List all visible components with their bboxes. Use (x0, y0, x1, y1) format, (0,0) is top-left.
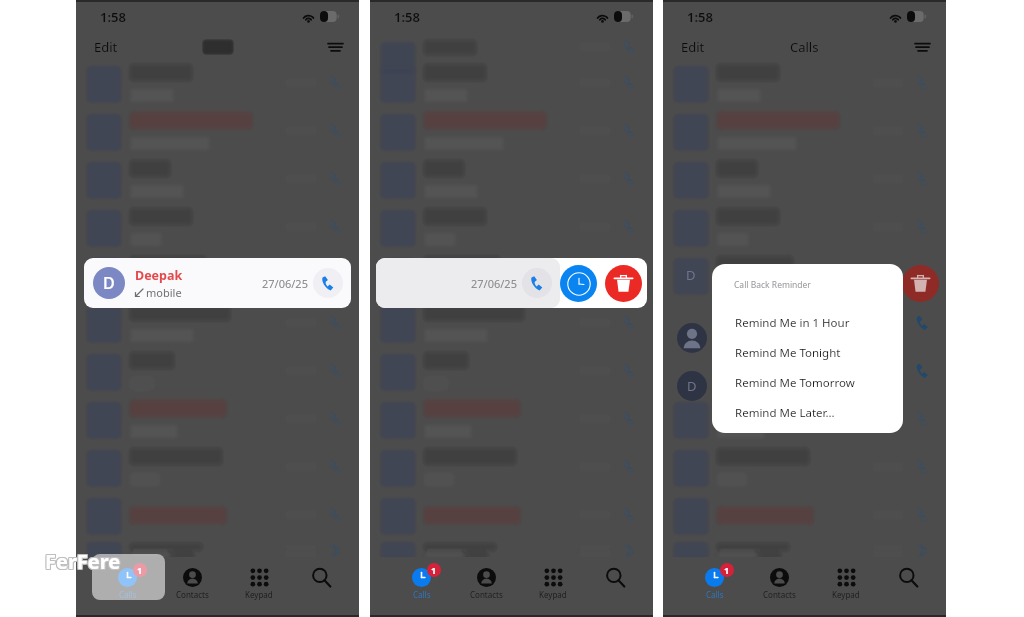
staticText: FerFere (44, 549, 120, 576)
staticText: Contacts (470, 589, 503, 600)
staticText: 1:58 (100, 8, 126, 26)
staticText: 1 (724, 564, 730, 576)
button[interactable]: Remind Me Tomorrow (712, 368, 903, 398)
button[interactable]: Contacts (753, 563, 806, 603)
staticText: 1 (137, 564, 143, 576)
button[interactable]: 27/06/25 (376, 258, 560, 308)
button[interactable]: Edit (663, 35, 723, 59)
button[interactable]: Filter (899, 38, 946, 56)
button[interactable]: D (84, 258, 351, 308)
staticText: Calls (413, 589, 431, 600)
button[interactable]: Search (594, 563, 637, 592)
staticText: D (99, 266, 109, 284)
staticText: mobile (146, 285, 182, 300)
button[interactable]: Edit (76, 35, 136, 59)
staticText: 1 (431, 564, 437, 576)
button[interactable]: 1 (693, 563, 736, 603)
staticText: 27/06/25 (262, 276, 308, 291)
staticText: Keypad (832, 589, 860, 600)
button[interactable]: Remind Me Later... (712, 398, 903, 428)
staticText: Keypad (539, 589, 567, 600)
staticText: Calls (790, 38, 819, 56)
button[interactable]: 1 (400, 563, 443, 603)
staticText: Calls (119, 589, 137, 600)
staticText: Remind Me Tonight (735, 345, 841, 361)
staticText: Contacts (176, 589, 209, 600)
staticText: FerFere (45, 549, 121, 576)
button[interactable]: Calls tab (92, 554, 165, 600)
button[interactable]: Call back reminder (560, 265, 597, 302)
staticText: Keypad (245, 589, 273, 600)
staticText: Contacts (763, 589, 796, 600)
staticText: Edit (94, 38, 118, 56)
staticText: FerFere (46, 547, 122, 574)
staticText: 1:58 (394, 8, 420, 26)
staticText: Remind Me Later... (735, 405, 835, 421)
button[interactable]: Delete (605, 265, 642, 302)
staticText: Remind Me Tomorrow (735, 375, 855, 391)
button[interactable]: Remind Me Tonight (712, 338, 903, 368)
button[interactable]: Contacts (166, 563, 219, 603)
staticText: D (103, 272, 115, 294)
staticText: D (687, 377, 697, 395)
staticText: Calls (706, 589, 724, 600)
button[interactable]: Keypad (822, 563, 870, 603)
staticText: FerFere (44, 548, 120, 575)
staticText: FerFere (46, 548, 122, 575)
button[interactable]: Call (313, 268, 343, 298)
button[interactable]: Filter (312, 38, 359, 56)
staticText: FerFere (45, 548, 121, 575)
staticText: 1:58 (687, 8, 713, 26)
button[interactable]: Delete (902, 265, 939, 302)
staticText: 27/06/25 (471, 276, 517, 291)
staticText: Edit (681, 38, 705, 56)
button[interactable]: Search (300, 563, 343, 592)
button[interactable]: Contacts (460, 563, 513, 603)
button[interactable]: Search (887, 563, 930, 592)
staticText: D (686, 266, 696, 284)
button[interactable]: Keypad (529, 563, 577, 603)
staticText: FerFere (45, 547, 121, 574)
staticText: Call Back Reminder (734, 279, 811, 291)
button[interactable]: Remind Me in 1 Hour (712, 308, 903, 338)
staticText: Remind Me in 1 Hour (735, 315, 850, 331)
staticText: Deepak (135, 267, 183, 284)
button[interactable]: Call (522, 268, 552, 298)
button[interactable]: 1 (106, 563, 149, 603)
staticText: FerFere (46, 549, 122, 576)
button[interactable]: Keypad (235, 563, 283, 603)
staticText: FerFere (44, 547, 120, 574)
